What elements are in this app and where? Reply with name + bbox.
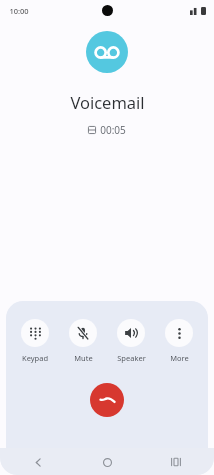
- staticText: Voicemail: [70, 91, 145, 113]
- button[interactable]: Home: [95, 450, 119, 474]
- button[interactable]: Speaker: [108, 318, 154, 364]
- staticText: 10:00: [9, 6, 29, 16]
- staticText: Speaker: [117, 353, 146, 363]
- button[interactable]: Keypad: [12, 318, 58, 364]
- staticText: Mute: [74, 353, 93, 363]
- button[interactable]: Recents: [164, 450, 188, 474]
- button[interactable]: More: [156, 318, 202, 364]
- button[interactable]: Back: [26, 450, 50, 474]
- staticText: Keypad: [22, 353, 48, 363]
- button[interactable]: End call: [90, 383, 124, 417]
- staticText: More: [170, 353, 189, 363]
- staticText: 00:05: [100, 123, 126, 137]
- button[interactable]: Mute: [60, 318, 106, 364]
